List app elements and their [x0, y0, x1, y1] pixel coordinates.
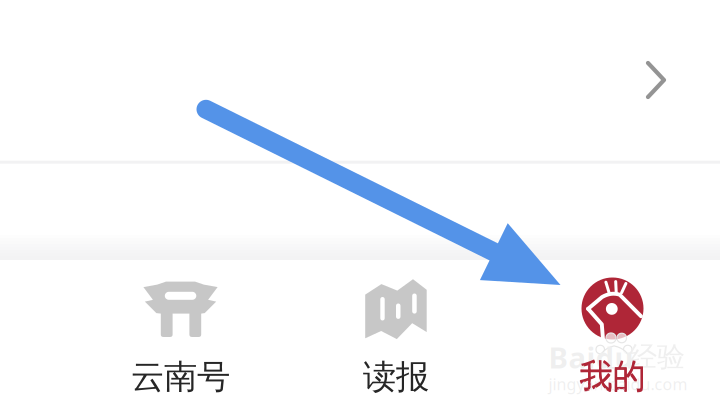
button[interactable]: 读报 [276, 260, 516, 408]
staticText: jingyan.baidu.com [548, 373, 687, 395]
staticText: 我的 [579, 356, 645, 397]
staticText: 我的 [579, 355, 645, 396]
staticText: Baidu [548, 337, 633, 376]
button[interactable]: 我的 [492, 260, 720, 408]
staticText: 云南号 [131, 356, 230, 397]
staticText: 读报 [363, 356, 429, 397]
button[interactable]: Open [645, 60, 667, 100]
staticText: 经验 [629, 340, 685, 374]
button[interactable]: 云南号 [60, 260, 300, 408]
